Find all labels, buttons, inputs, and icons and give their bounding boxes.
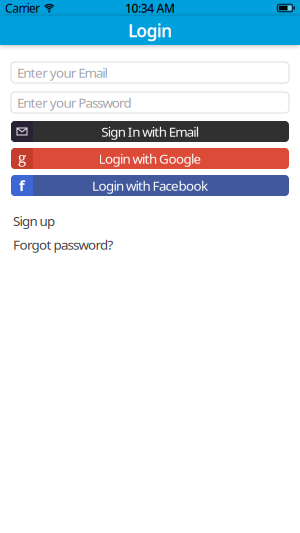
button[interactable]: Sign In with Email — [11, 121, 289, 142]
staticText: Forgot password? — [13, 236, 113, 253]
button[interactable]: Forgot password? — [13, 236, 113, 253]
staticText: Login — [128, 19, 172, 42]
staticText: Sign In with Email — [101, 123, 199, 140]
staticText: Enter your Password — [17, 94, 131, 111]
button[interactable]: g — [11, 148, 289, 169]
staticText: Login with Facebook — [92, 177, 208, 194]
button[interactable]: Sign up — [13, 212, 55, 230]
staticText: f — [19, 176, 25, 195]
staticText: Enter your Email — [17, 64, 107, 81]
staticText: g — [18, 147, 26, 167]
staticText: Carrier — [5, 0, 40, 16]
staticText: 10:34 AM — [125, 0, 175, 16]
staticText: Sign up — [13, 212, 55, 230]
staticText: Login with Google — [98, 150, 201, 167]
button[interactable]: f — [11, 175, 289, 196]
